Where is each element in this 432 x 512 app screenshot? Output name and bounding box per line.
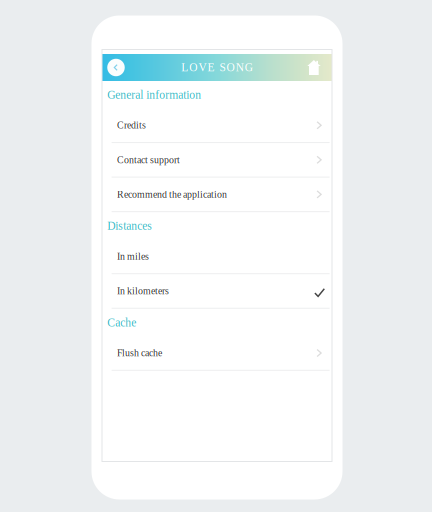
- staticText: General information: [107, 88, 201, 101]
- staticText: In kilometers: [117, 285, 169, 296]
- staticText: LOVE SONG: [181, 61, 253, 74]
- button[interactable]: Home: [301, 54, 327, 81]
- button[interactable]: In kilometers: [102, 274, 332, 309]
- button[interactable]: Credits: [102, 108, 332, 143]
- button[interactable]: In miles: [102, 240, 332, 274]
- button[interactable]: Recommend the application: [102, 178, 332, 212]
- staticText: Recommend the application: [117, 189, 227, 200]
- staticText: Credits: [117, 120, 146, 131]
- staticText: Cache: [107, 316, 136, 329]
- staticText: Contact support: [117, 154, 180, 165]
- button[interactable]: Flush cache: [102, 336, 332, 371]
- button[interactable]: Back: [102, 54, 129, 81]
- staticText: Flush cache: [117, 348, 162, 358]
- staticText: In miles: [117, 251, 149, 262]
- staticText: Distances: [107, 219, 152, 232]
- button[interactable]: Contact support: [102, 143, 332, 178]
